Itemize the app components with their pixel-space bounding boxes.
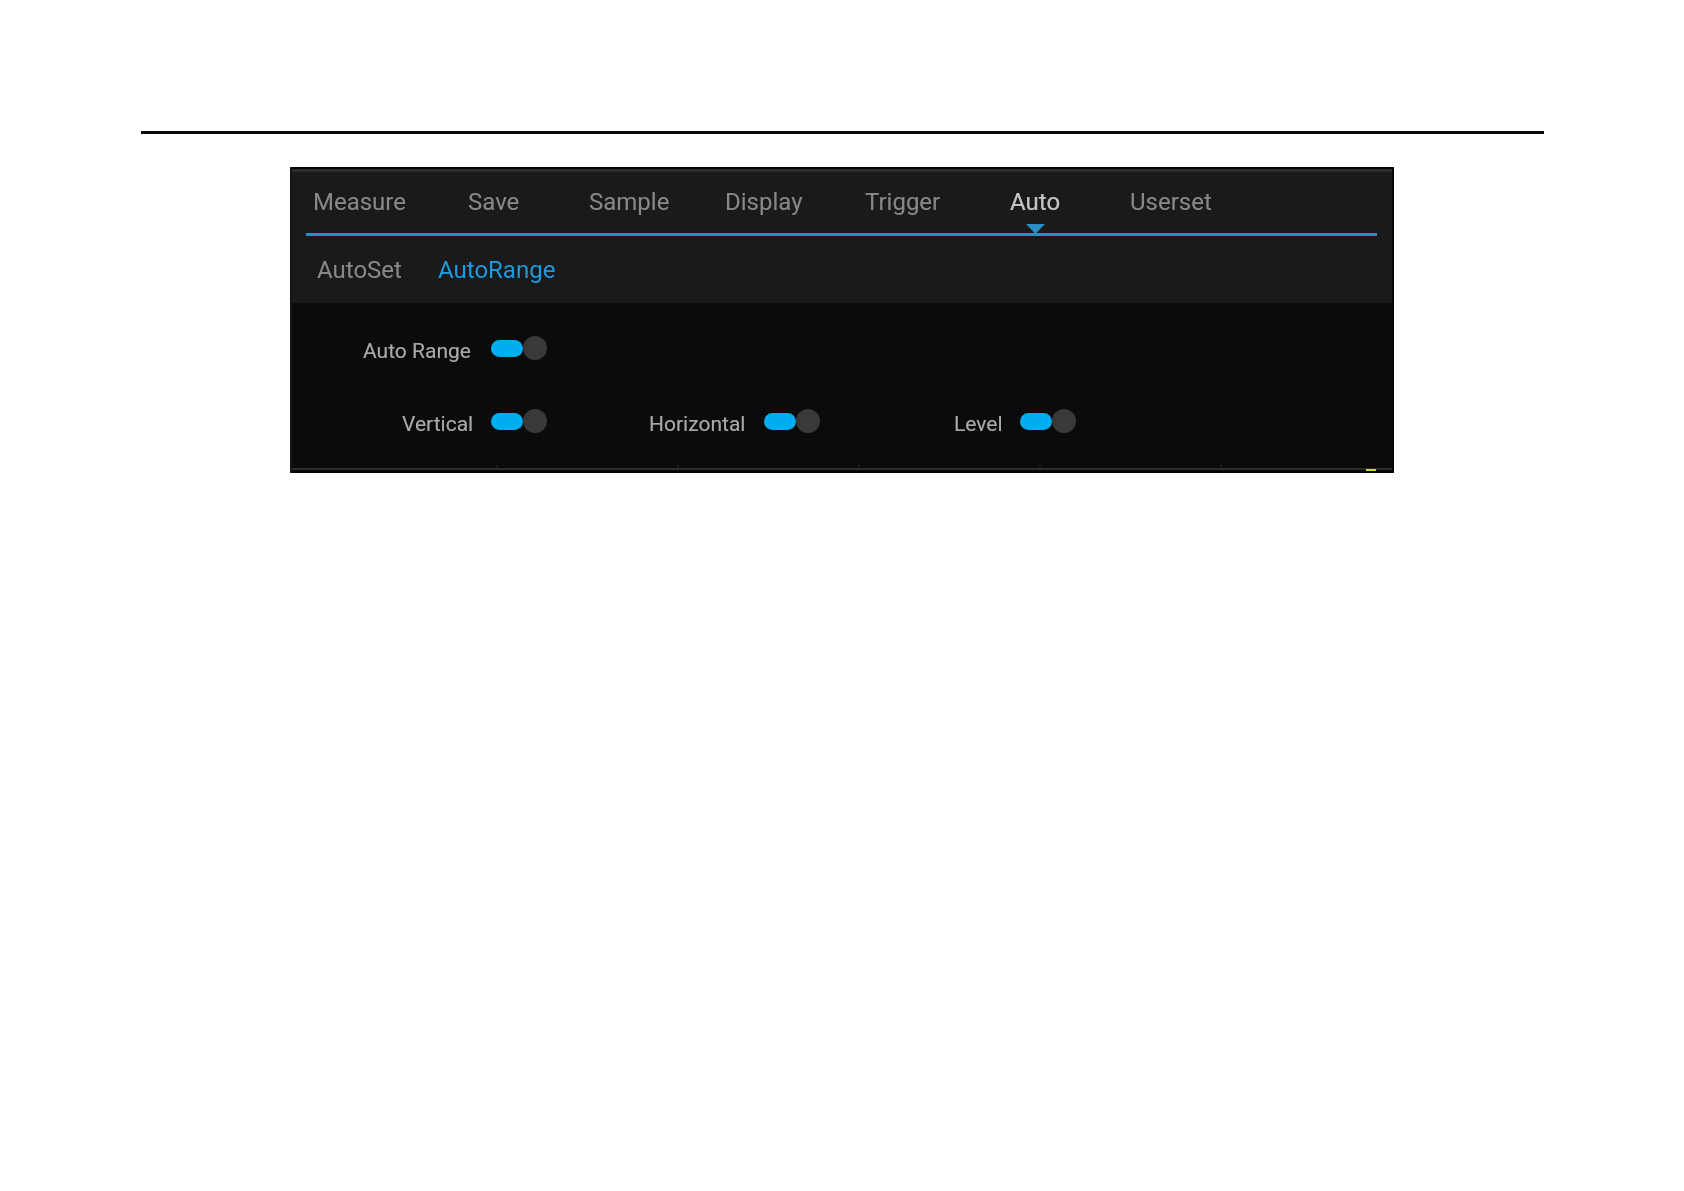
staticText: Level (954, 412, 1003, 437)
button[interactable]: Level switch (1020, 409, 1076, 433)
staticText: Save (468, 188, 520, 216)
button[interactable]: Vertical (392, 402, 484, 447)
button[interactable]: Horizontal (639, 402, 756, 447)
button[interactable]: AutoRange (424, 244, 570, 296)
button[interactable]: Save (454, 176, 534, 228)
button[interactable]: Auto (996, 176, 1075, 228)
button[interactable]: Userset (1116, 176, 1226, 228)
button[interactable]: AutoSet (303, 244, 416, 296)
staticText: AutoRange (438, 256, 556, 284)
button[interactable]: Auto Range (353, 329, 481, 374)
staticText: AutoSet (317, 256, 402, 284)
button[interactable]: Horizontal switch (764, 409, 820, 433)
staticText: Vertical (402, 412, 474, 437)
button[interactable]: Display (711, 176, 817, 228)
staticText: Auto Range (363, 339, 471, 364)
staticText: Horizontal (649, 412, 746, 437)
button[interactable]: Trigger (851, 176, 955, 228)
button[interactable]: Level (944, 402, 1013, 447)
staticText: Display (725, 188, 803, 216)
staticText: Auto (1010, 188, 1061, 216)
staticText: Measure (313, 188, 406, 216)
staticText: Sample (589, 188, 670, 216)
button[interactable]: Auto Range switch (491, 336, 547, 360)
button[interactable]: Vertical switch (491, 409, 547, 433)
button[interactable]: Measure (299, 176, 420, 228)
staticText: Trigger (865, 188, 941, 216)
button[interactable]: Sample (575, 176, 684, 228)
staticText: Userset (1130, 188, 1212, 216)
